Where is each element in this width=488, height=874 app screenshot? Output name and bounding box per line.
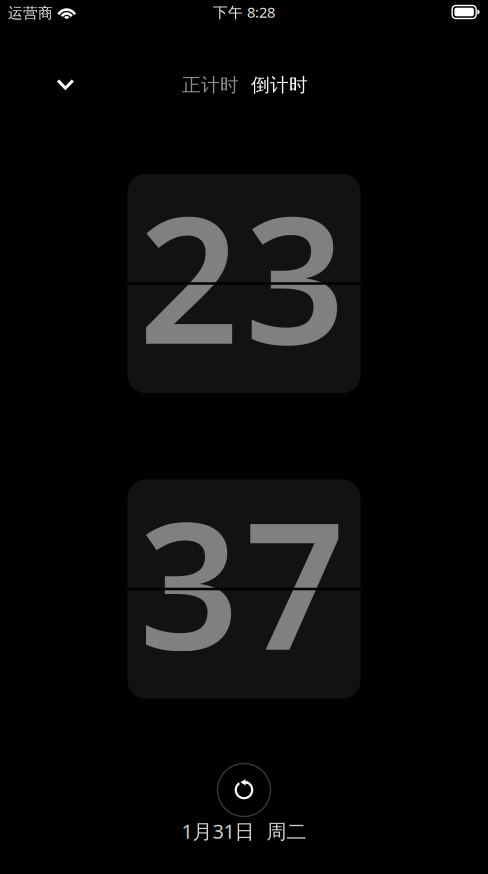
staticText: 运营商 — [8, 4, 53, 22]
button[interactable]: 正计时 — [176, 65, 245, 104]
staticText: 1月31日 周二 — [181, 818, 306, 844]
staticText: 37 — [138, 464, 345, 698]
staticText: 倒计时 — [251, 73, 308, 96]
staticText: 正计时 — [182, 73, 239, 96]
button[interactable]: Reset — [216, 762, 272, 818]
button[interactable]: Collapse — [44, 63, 88, 107]
button[interactable]: 倒计时 — [245, 65, 314, 104]
staticText: 23 — [138, 159, 345, 392]
staticText: 下午 8:28 — [213, 2, 275, 22]
